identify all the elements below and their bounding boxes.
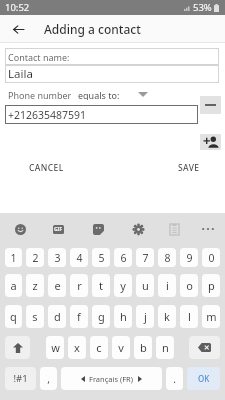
button[interactable]: j: [136, 305, 154, 328]
staticText: m: [206, 309, 217, 324]
button[interactable]: 1: [5, 248, 22, 267]
staticText: Contact name:: [8, 51, 70, 63]
staticText: GIF: [54, 226, 63, 233]
staticText: f: [77, 309, 81, 324]
button[interactable]: l: [180, 305, 198, 328]
staticText: 0: [208, 251, 215, 265]
button[interactable]: ,: [40, 367, 57, 390]
button[interactable]: h: [114, 305, 132, 328]
staticText: 2: [32, 251, 39, 265]
button[interactable]: !#1: [5, 367, 36, 390]
staticText: 53%: [193, 1, 212, 14]
staticText: 4: [76, 251, 83, 265]
button[interactable]: .: [166, 367, 183, 390]
button[interactable]: x: [68, 336, 86, 359]
staticText: z: [32, 278, 38, 293]
button[interactable]: Backspace: [189, 336, 220, 359]
button[interactable]: g: [92, 305, 110, 328]
staticText: Laila: [8, 66, 33, 82]
button[interactable]: w: [46, 336, 64, 359]
button[interactable]: n: [156, 336, 174, 359]
button[interactable]: y: [114, 274, 132, 297]
button[interactable]: c: [90, 336, 108, 359]
button[interactable]: s: [26, 305, 44, 328]
staticText: d: [54, 309, 61, 324]
staticText: a: [10, 278, 17, 293]
button[interactable]: 0: [202, 248, 220, 267]
button[interactable]: CANCEL: [29, 161, 64, 175]
button[interactable]: Français (FR): [61, 367, 162, 390]
button[interactable]: e: [48, 274, 66, 297]
staticText: +212635487591: [8, 108, 87, 122]
button[interactable]: sticker: [84, 213, 112, 245]
button[interactable]: 7: [136, 248, 154, 267]
button[interactable]: Contact name:: [5, 48, 219, 65]
button[interactable]: SAVE: [178, 161, 200, 175]
button[interactable]: r: [70, 274, 88, 297]
staticText: e: [54, 278, 61, 293]
staticText: 9: [186, 251, 193, 265]
button[interactable]: d: [48, 305, 66, 328]
button[interactable]: Remove phone number: [200, 96, 221, 114]
button[interactable]: more: [194, 213, 222, 245]
button[interactable]: clipboard: [160, 213, 188, 245]
button[interactable]: 2: [26, 248, 44, 267]
button[interactable]: OK: [187, 367, 220, 390]
button[interactable]: v: [112, 336, 130, 359]
button[interactable]: a: [5, 274, 22, 297]
button[interactable]: b: [134, 336, 152, 359]
button[interactable]: 6: [114, 248, 132, 267]
button[interactable]: gif: [44, 213, 72, 245]
button[interactable]: 5: [92, 248, 110, 267]
button[interactable]: z: [26, 274, 44, 297]
staticText: OK: [198, 373, 210, 384]
button[interactable]: 9: [180, 248, 198, 267]
button[interactable]: 8: [158, 248, 176, 267]
staticText: w: [51, 340, 60, 355]
button[interactable]: m: [202, 305, 220, 328]
staticText: SAVE: [178, 162, 200, 174]
staticText: !#1: [13, 372, 28, 385]
button[interactable]: Add phone number: [200, 134, 221, 150]
staticText: CANCEL: [29, 162, 64, 174]
staticText: 8: [164, 251, 171, 265]
staticText: s: [32, 309, 38, 324]
staticText: equals to:: [78, 89, 120, 100]
button[interactable]: settings: [124, 213, 152, 245]
staticText: 3: [54, 251, 61, 265]
staticText: j: [144, 309, 147, 324]
staticText: b: [140, 340, 147, 355]
staticText: q: [10, 309, 17, 324]
staticText: Français (FR): [89, 374, 134, 384]
staticText: l: [188, 309, 191, 324]
staticText: 10:52: [5, 1, 30, 14]
button[interactable]: p: [202, 274, 220, 297]
staticText: x: [74, 340, 80, 355]
staticText: Adding a contact: [44, 21, 141, 37]
staticText: 5: [98, 251, 105, 265]
button[interactable]: Back: [6, 17, 30, 41]
button[interactable]: 3: [48, 248, 66, 267]
button[interactable]: o: [180, 274, 198, 297]
button[interactable]: 4: [70, 248, 88, 267]
button[interactable]: +212635487591: [5, 105, 198, 124]
staticText: c: [96, 340, 102, 355]
staticText: n: [162, 340, 169, 355]
button[interactable]: u: [136, 274, 154, 297]
staticText: h: [120, 309, 127, 324]
staticText: r: [77, 278, 82, 293]
staticText: .: [173, 372, 176, 386]
staticText: 1: [10, 251, 17, 265]
button[interactable]: q: [5, 305, 22, 328]
staticText: t: [99, 278, 103, 293]
staticText: v: [118, 340, 124, 355]
button[interactable]: t: [92, 274, 110, 297]
button[interactable]: Shift: [5, 336, 30, 359]
button[interactable]: Laila: [5, 65, 219, 83]
button[interactable]: f: [70, 305, 88, 328]
button[interactable]: emoji: [6, 213, 34, 245]
other: Backspace: [198, 343, 211, 352]
button[interactable]: i: [158, 274, 176, 297]
button[interactable]: k: [158, 305, 176, 328]
staticText: i: [166, 278, 169, 293]
